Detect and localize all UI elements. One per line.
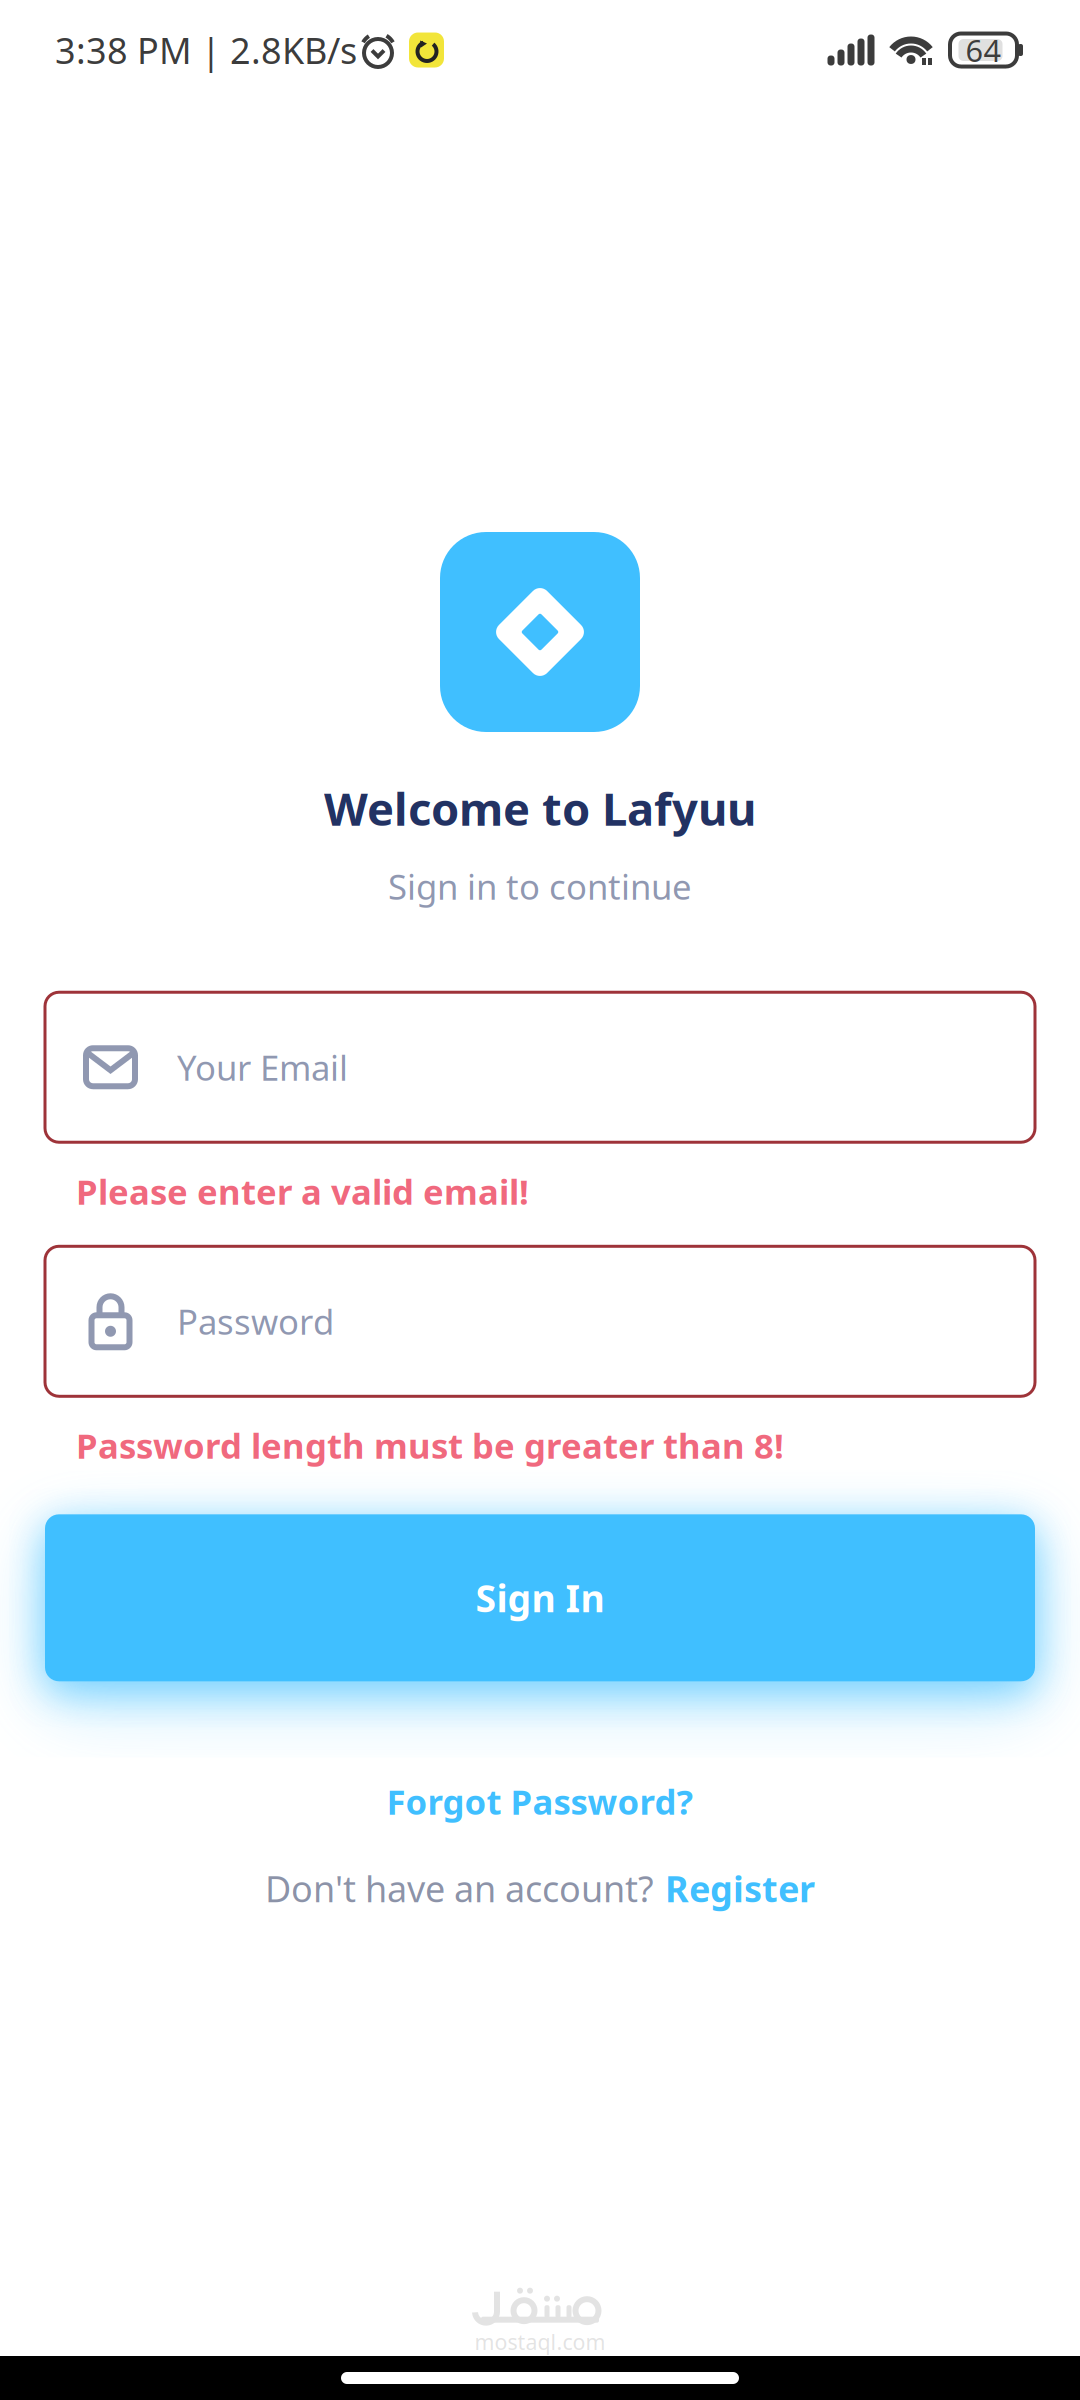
button[interactable]: Sign In: [45, 1514, 1035, 1681]
staticText: Your Email: [177, 1044, 348, 1090]
button[interactable]: Register: [665, 1864, 815, 1912]
staticText: 64: [965, 30, 1001, 70]
staticText: Welcome to Lafyuu: [324, 778, 756, 838]
staticText: mostaql.com: [474, 2328, 605, 2356]
staticText: Sign in to continue: [388, 863, 692, 909]
staticText: Register: [665, 1864, 815, 1912]
staticText: Don't have an account?: [265, 1864, 654, 1912]
button[interactable]: Password: [45, 1246, 1035, 1396]
staticText: Forgot Password?: [386, 1778, 693, 1824]
staticText: Password: [177, 1298, 334, 1344]
button[interactable]: Forgot Password?: [386, 1778, 693, 1824]
staticText: Password length must be greater than 8!: [76, 1422, 784, 1468]
staticText: Sign In: [475, 1573, 604, 1623]
button[interactable]: Your Email: [45, 992, 1035, 1142]
staticText: 3:38 PM | 2.8KB/s: [55, 26, 357, 74]
staticText: Please enter a valid email!: [76, 1168, 529, 1214]
